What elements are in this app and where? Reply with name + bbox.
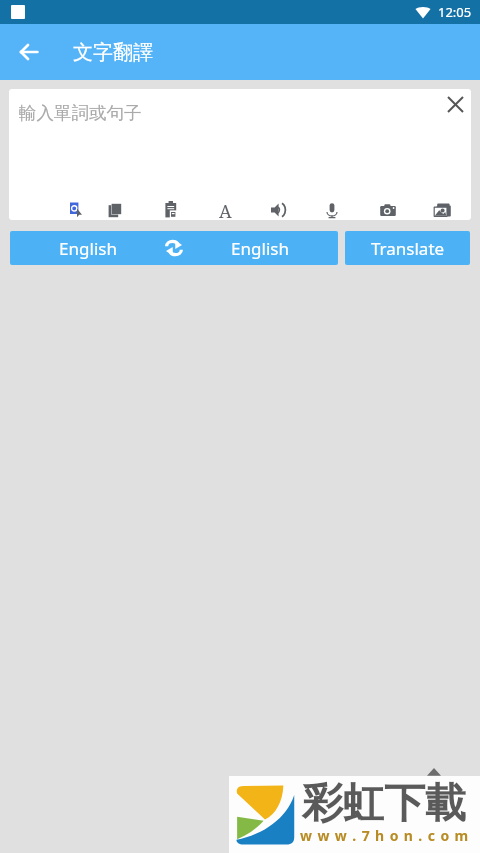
staticText: 12:05 xyxy=(438,3,472,21)
button[interactable]: English xyxy=(10,231,338,265)
button[interactable]: Translate xyxy=(345,231,470,265)
button[interactable]: Clear xyxy=(439,89,471,120)
staticText: Translate xyxy=(371,237,445,260)
staticText: A xyxy=(219,199,232,220)
staticText: 文字翻譯 xyxy=(73,40,153,65)
button[interactable]: Back xyxy=(12,35,46,69)
staticText: 輸入單詞或句子 xyxy=(19,102,142,124)
button[interactable]: Handwriting xyxy=(211,196,239,220)
staticText: English xyxy=(182,237,338,260)
button[interactable]: Paste xyxy=(157,196,185,220)
button[interactable]: Copy xyxy=(102,196,130,220)
staticText: English xyxy=(10,237,166,260)
button[interactable]: Gallery xyxy=(428,196,456,220)
button[interactable]: Voice input xyxy=(318,196,346,220)
button[interactable]: Translate document xyxy=(62,196,90,220)
staticText: w w w . 7 h o n . c o m xyxy=(300,826,470,845)
button[interactable]: Camera xyxy=(374,196,402,220)
staticText: 彩虹下載 xyxy=(302,778,466,830)
button[interactable]: Listen xyxy=(265,196,293,220)
